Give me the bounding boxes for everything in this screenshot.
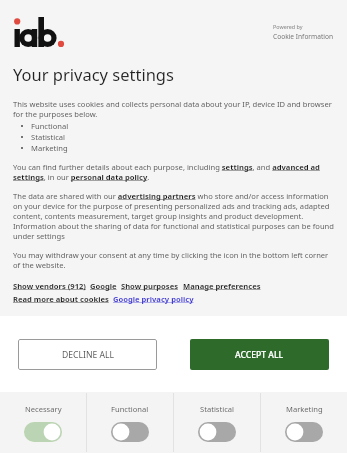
staticText: You may withdraw your consent at any tim… xyxy=(13,250,334,270)
staticText: The data are shared with our advertising… xyxy=(13,191,334,241)
button[interactable]: Functional xyxy=(87,392,173,453)
button[interactable]: Statistical toggle xyxy=(198,422,236,442)
staticText: You can find further details about each … xyxy=(13,162,334,182)
button[interactable]: Show vendors (912) xyxy=(13,281,86,291)
button[interactable]: Read more about cookies xyxy=(13,294,109,304)
button[interactable]: Functional toggle xyxy=(111,422,149,442)
staticText: Statistical xyxy=(31,132,66,142)
button[interactable]: Necessary xyxy=(0,392,86,453)
button[interactable]: Show purposes xyxy=(121,281,179,291)
staticText: DECLINE ALL xyxy=(62,349,114,361)
button[interactable]: ACCEPT ALL xyxy=(190,339,329,370)
staticText: Functional xyxy=(31,121,69,131)
button[interactable]: Google xyxy=(90,281,117,291)
button[interactable]: Statistical xyxy=(174,392,260,453)
staticText: Marketing xyxy=(31,143,68,153)
button[interactable]: Necessary toggle xyxy=(24,422,62,442)
button[interactable]: Google privacy policy xyxy=(113,294,194,304)
staticText: This website uses cookies and collects p… xyxy=(13,99,334,119)
button[interactable]: DECLINE ALL xyxy=(18,339,157,370)
staticText: ACCEPT ALL xyxy=(235,349,284,361)
button[interactable]: Manage preferences xyxy=(183,281,261,291)
button[interactable]: Marketing toggle xyxy=(285,422,323,442)
button[interactable]: Marketing xyxy=(261,392,347,453)
staticText: Marketing xyxy=(286,404,323,414)
staticText: Functional xyxy=(111,404,149,414)
staticText: Your privacy settings xyxy=(13,63,174,85)
staticText: Powered by xyxy=(273,23,303,30)
staticText: Necessary xyxy=(25,404,62,414)
staticText: Statistical xyxy=(200,404,235,414)
staticText: Cookie Information xyxy=(273,32,334,41)
